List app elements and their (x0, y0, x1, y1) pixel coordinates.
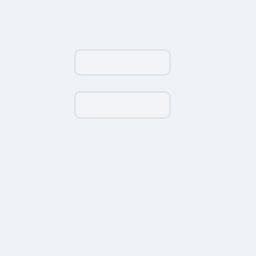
button[interactable]: Second field (75, 92, 170, 118)
button[interactable]: First field (75, 50, 170, 75)
